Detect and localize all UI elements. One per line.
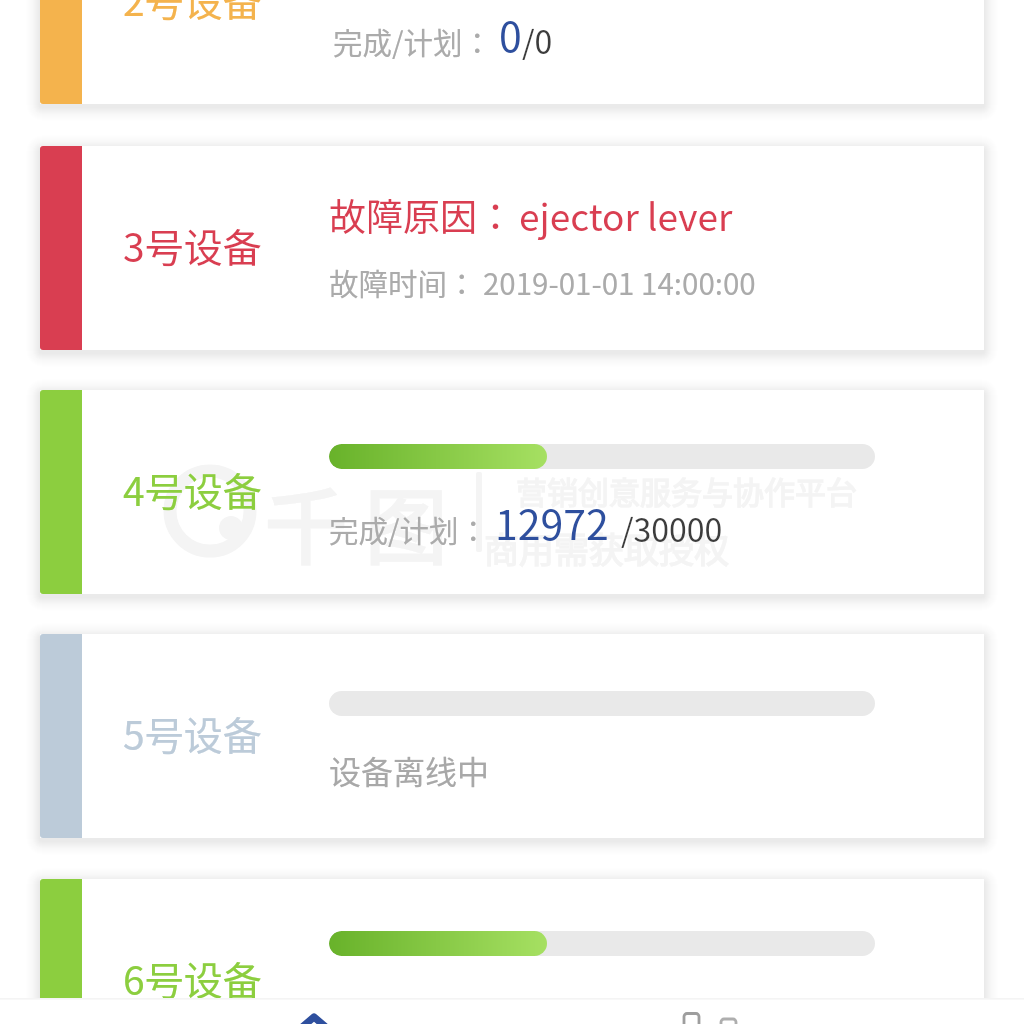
staticText: 6号设备 — [123, 950, 262, 1006]
staticText: 营销创意服务与协作平台 — [516, 468, 857, 513]
staticText: 千 图 — [265, 462, 448, 581]
staticText: 设备离线中 — [329, 747, 490, 793]
staticText: 3号设备 — [123, 217, 262, 273]
staticText: 4号设备 — [123, 461, 262, 517]
staticText: 12972 — [495, 492, 609, 551]
staticText: /30000 — [621, 505, 723, 551]
button[interactable]: 6号设备 — [40, 879, 984, 1024]
button[interactable]: Home — [0, 998, 512, 1024]
button[interactable]: 4号设备 — [40, 390, 984, 594]
staticText: 完成/计划： — [333, 20, 493, 63]
button[interactable]: 5号设备 — [40, 634, 984, 838]
button[interactable]: 2号设备 — [40, 0, 984, 104]
staticText: 商用需获取授权 — [484, 522, 730, 573]
staticText: /0 — [522, 17, 553, 63]
staticText: ejector lever — [519, 188, 733, 242]
button[interactable]: Reports — [512, 998, 1024, 1024]
staticText: 0 — [499, 4, 522, 63]
staticText: 2019-01-01 14:00:00 — [483, 261, 756, 304]
staticText: 完成/计划： — [329, 508, 489, 551]
staticText: 故障原因： — [329, 188, 514, 242]
staticText: 2号设备 — [123, 0, 262, 27]
staticText: 5号设备 — [123, 705, 262, 761]
button[interactable]: 3号设备 — [40, 146, 984, 350]
staticText: 故障时间： — [329, 261, 477, 304]
